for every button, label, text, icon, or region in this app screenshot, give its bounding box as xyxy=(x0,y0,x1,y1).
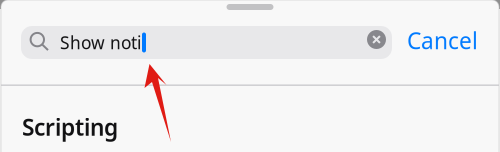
staticText: Show noti xyxy=(60,31,141,54)
staticText: Cancel xyxy=(407,25,478,55)
staticText: Scripting xyxy=(22,112,118,142)
button[interactable]: Show noti xyxy=(21,26,392,59)
button[interactable]: Cancel xyxy=(407,27,478,57)
